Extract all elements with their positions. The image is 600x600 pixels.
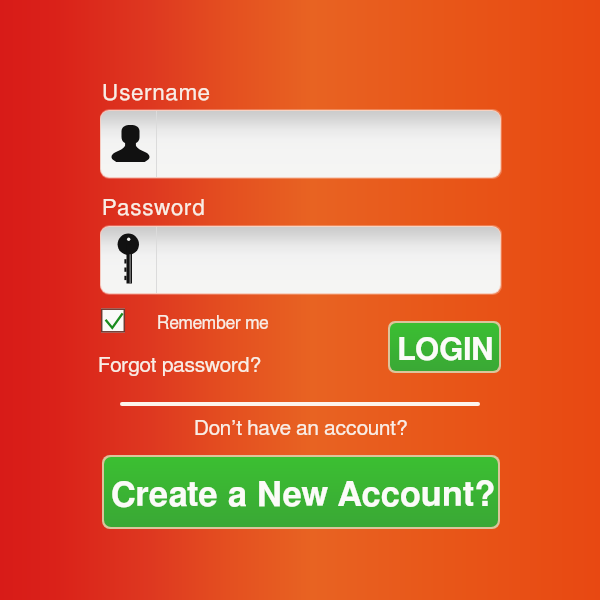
staticText: Remember me [157, 315, 269, 333]
button[interactable]: Username field [101, 111, 500, 177]
other: Remember me checkbox, checked [101, 310, 125, 338]
button[interactable]: Password field [101, 227, 500, 293]
staticText: Password [102, 197, 206, 220]
staticText: Don’t have an account? [194, 418, 408, 439]
button[interactable]: LOGIN [390, 323, 499, 371]
button[interactable]: Create a New Account? [104, 457, 498, 527]
button[interactable]: Remember me checkbox, checked [101, 310, 269, 338]
staticText: Create a New Account? [111, 478, 496, 513]
staticText: Username [102, 82, 211, 105]
staticText: LOGIN [397, 335, 495, 366]
button[interactable]: Forgot password? [98, 355, 262, 376]
